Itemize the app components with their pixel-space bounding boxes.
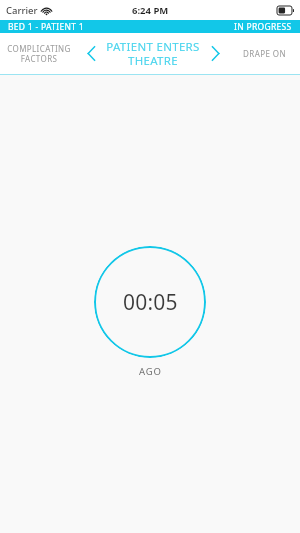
button[interactable]: 00:05 xyxy=(94,246,206,358)
button[interactable]: DRAPE ON xyxy=(228,33,300,74)
staticText: PATIENT ENTERS THEATRE xyxy=(106,39,200,68)
staticText: Carrier xyxy=(6,4,38,17)
staticText: DRAPE ON xyxy=(243,48,286,59)
staticText: 6:24 PM xyxy=(132,4,169,17)
staticText: BED 1 - PATIENT 1 xyxy=(8,21,84,33)
button[interactable]: Next step xyxy=(202,33,228,74)
staticText: COMPLICATING FACTORS xyxy=(7,43,71,64)
button[interactable]: Previous step xyxy=(78,33,104,74)
button[interactable]: PATIENT ENTERS THEATRE xyxy=(104,33,202,74)
staticText: 00:05 xyxy=(123,288,178,317)
staticText: IN PROGRESS xyxy=(234,21,292,33)
button[interactable]: COMPLICATING FACTORS xyxy=(0,33,78,74)
button[interactable]: BED 1 - PATIENT 1 xyxy=(0,20,300,33)
staticText: AGO xyxy=(139,365,162,378)
